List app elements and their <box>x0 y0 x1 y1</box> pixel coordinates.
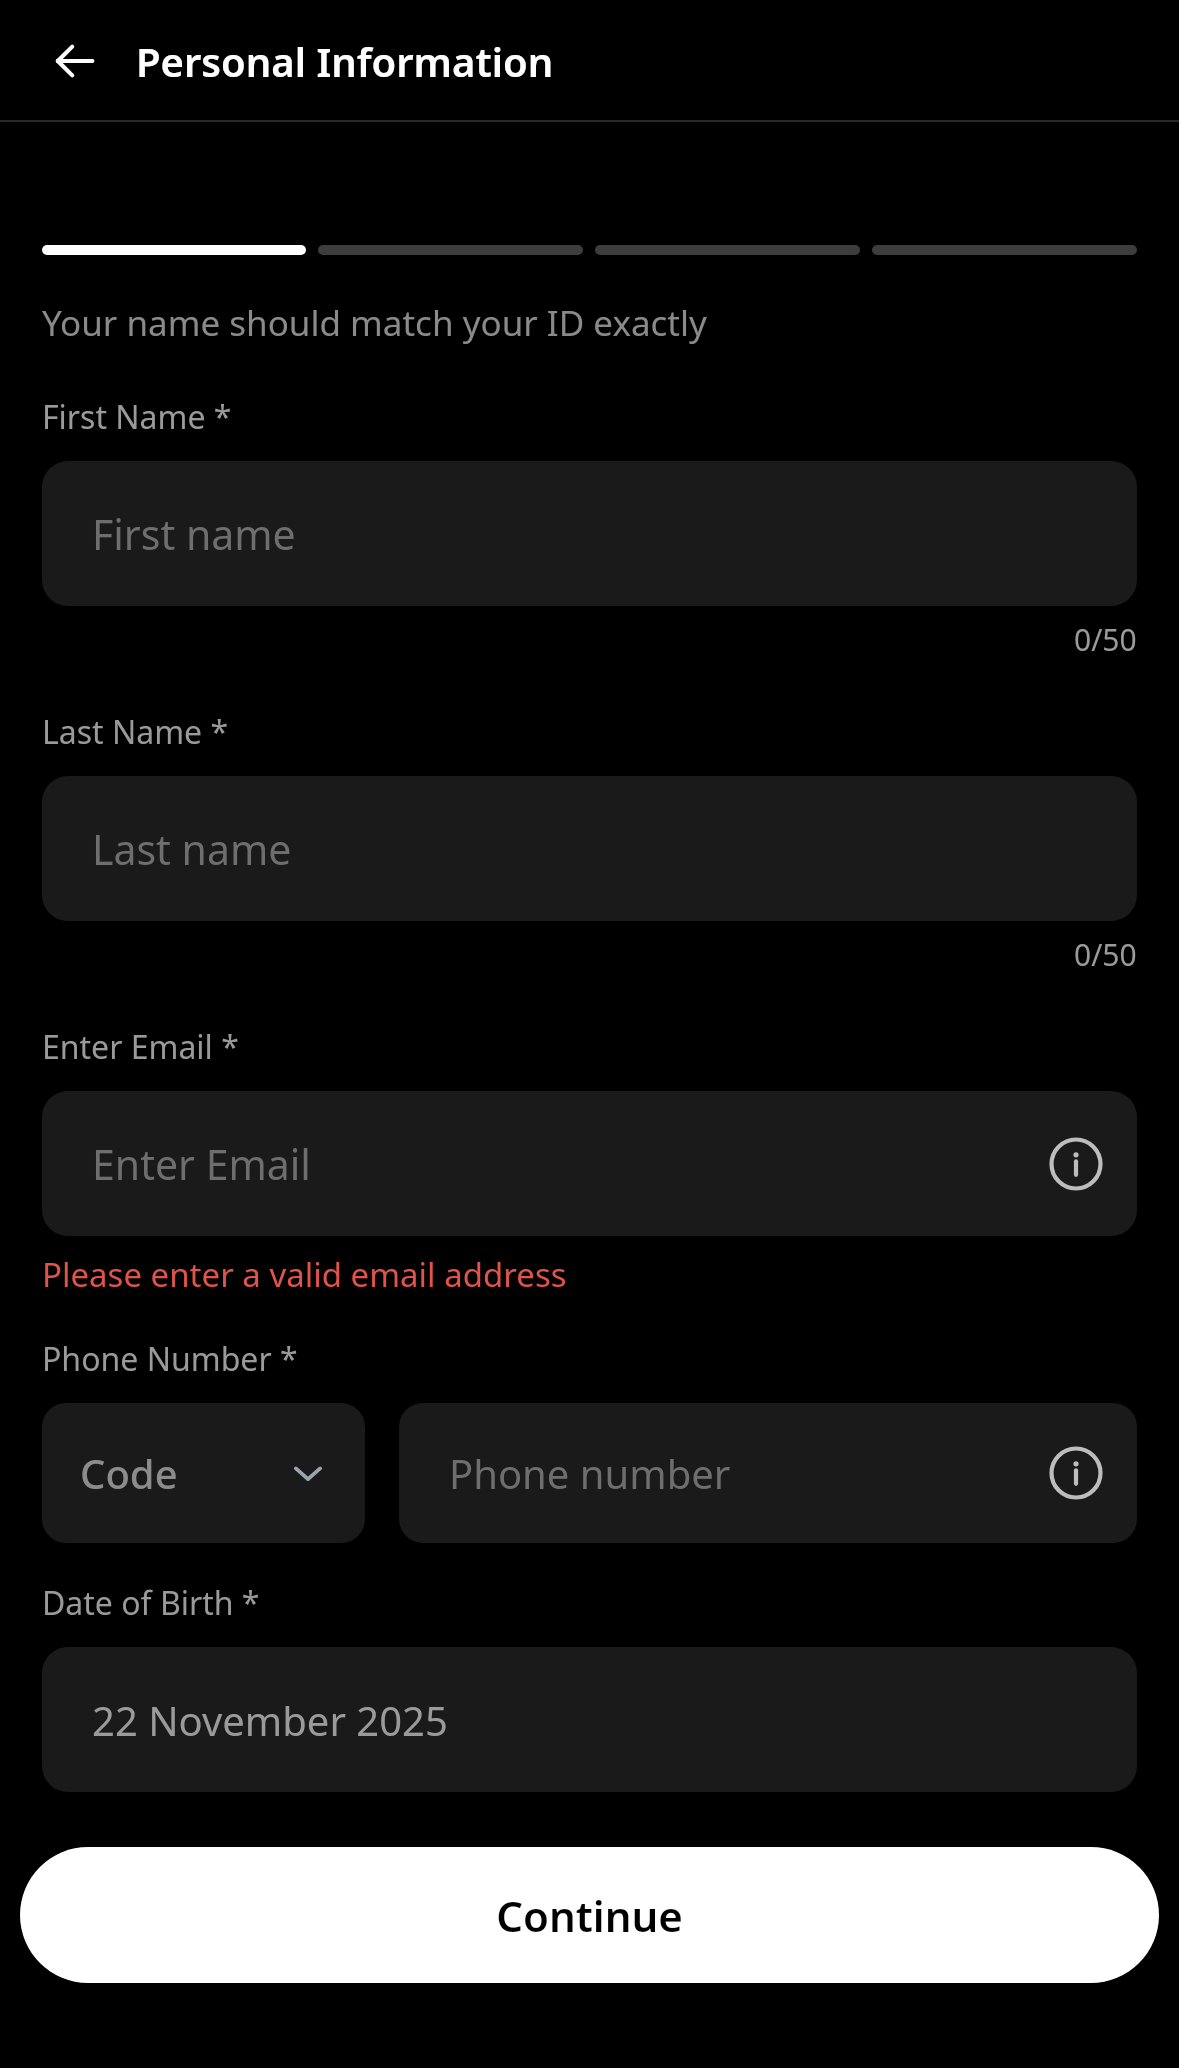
staticText: 22 November 2025 <box>92 1693 448 1747</box>
staticText: 0/50 <box>1074 619 1137 660</box>
staticText: First name <box>92 506 296 562</box>
staticText: First Name * <box>42 395 232 439</box>
staticText: Last Name * <box>42 710 229 754</box>
staticText: Your name should match your ID exactly <box>42 299 707 347</box>
button[interactable]: First name <box>42 461 1137 606</box>
staticText: Please enter a valid email address <box>42 1252 567 1297</box>
button[interactable]: 22 November 2025 <box>42 1647 1137 1792</box>
staticText: Continue <box>496 1887 683 1944</box>
staticText: Personal Information <box>136 34 554 88</box>
staticText: Phone Number * <box>42 1337 298 1381</box>
staticText: Code <box>80 1446 178 1500</box>
staticText: Phone number <box>449 1446 731 1500</box>
staticText: Enter Email <box>92 1136 311 1192</box>
button[interactable]: Continue <box>20 1847 1159 1983</box>
button[interactable]: Last name <box>42 776 1137 921</box>
button[interactable]: Information <box>1047 1135 1105 1193</box>
button[interactable]: Back <box>36 19 120 103</box>
button[interactable]: Enter Email <box>42 1091 1137 1236</box>
staticText: Date of Birth * <box>42 1581 260 1625</box>
button[interactable]: Information <box>1047 1444 1105 1502</box>
button[interactable]: Phone number <box>399 1403 1137 1543</box>
staticText: Last name <box>92 821 292 877</box>
staticText: 0/50 <box>1074 934 1137 975</box>
staticText: Enter Email * <box>42 1025 239 1069</box>
button[interactable]: Code <box>42 1403 365 1543</box>
